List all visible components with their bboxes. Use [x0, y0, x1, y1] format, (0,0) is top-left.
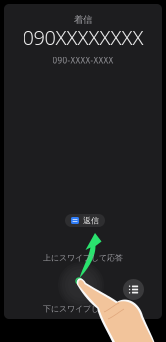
staticText: 090XXXXXXXX — [22, 24, 143, 51]
staticText: 返信 — [83, 216, 99, 225]
button[interactable]: Options — [123, 279, 144, 300]
staticText: 090-XXXX-XXXX — [52, 55, 113, 66]
button[interactable]: 返信 — [65, 214, 105, 227]
staticText: 着信 — [74, 14, 92, 25]
staticText: 下にスワイプして拒否 — [43, 304, 123, 314]
staticText: 上にスワイプして応答 — [43, 253, 123, 263]
